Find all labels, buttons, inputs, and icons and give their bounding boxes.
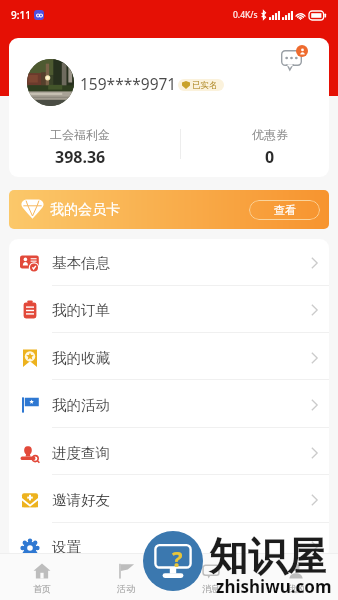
button[interactable]: 查看 [249,200,320,220]
button[interactable]: Messages [274,38,314,76]
staticText: 我的活动 [52,396,110,414]
staticText: 0.4K/s [233,9,258,21]
button[interactable]: 消息 [168,556,253,600]
button[interactable]: 我的活动 [9,381,329,428]
button[interactable]: 我的收藏 [9,334,329,381]
button[interactable]: 我的 [253,556,338,600]
staticText: 0 [265,146,275,168]
staticText: ? [172,543,183,573]
staticText: 我的会员卡 [50,201,120,219]
button[interactable]: 工会福利金 [40,127,120,168]
staticText: 我的 [287,583,305,594]
staticText: 知识屋 [209,532,326,581]
staticText: 首页 [33,583,51,594]
button[interactable]: 进度查询 [9,429,329,476]
button[interactable]: 设置 [9,523,329,559]
staticText: 基本信息 [52,254,110,272]
button[interactable]: 基本信息 [9,239,329,286]
staticText: 优惠券 [252,127,288,142]
button[interactable]: 邀请好友 [9,476,329,523]
staticText: 159****9971 [80,73,177,94]
staticText: 查看 [274,203,296,217]
staticText: 已实名 [192,80,218,91]
staticText: 邀请好友 [52,491,110,509]
button[interactable]: 活动 [84,556,168,600]
staticText: zhishiwu.com [216,575,332,598]
button[interactable]: 首页 [0,556,84,600]
button[interactable]: 我的订单 [9,286,329,333]
staticText: 进度查询 [52,444,110,462]
button[interactable]: 我的会员卡 [9,190,329,229]
staticText: 消息 [202,583,220,594]
staticText: 398.36 [55,146,106,168]
staticText: 9:11 [11,8,31,22]
button[interactable]: 优惠券 [230,127,310,168]
staticText: 工会福利金 [50,127,110,142]
staticText: 活动 [117,583,135,594]
staticText: 我的订单 [52,301,110,319]
staticText: 我的收藏 [52,349,110,367]
staticText: 设置 [52,538,81,556]
